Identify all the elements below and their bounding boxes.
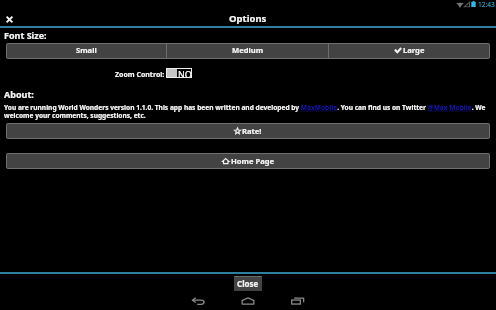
staticText: 12:43 bbox=[478, 0, 495, 9]
button[interactable]: Rate! bbox=[6, 123, 490, 139]
staticText: NO bbox=[178, 68, 192, 78]
button[interactable]: Home Page bbox=[6, 153, 490, 169]
staticText: Medium bbox=[232, 45, 264, 55]
button[interactable]: Home bbox=[223, 291, 273, 310]
button[interactable]: Back bbox=[173, 291, 223, 310]
button[interactable]: Small bbox=[6, 43, 166, 59]
button[interactable]: Large bbox=[329, 43, 490, 59]
button[interactable]: Recent apps bbox=[273, 291, 323, 310]
staticText: You are running World Wonders version 1.… bbox=[4, 103, 493, 120]
button[interactable]: Close bbox=[234, 276, 262, 291]
staticText: Rate! bbox=[242, 126, 262, 136]
staticText: Large bbox=[403, 45, 425, 55]
staticText: Font Size: bbox=[4, 29, 47, 41]
staticText: Small bbox=[76, 45, 97, 55]
button[interactable]: Medium bbox=[167, 43, 328, 59]
staticText: Zoom Control: bbox=[115, 70, 165, 80]
staticText: About: bbox=[4, 88, 34, 100]
staticText: Home Page bbox=[231, 156, 275, 166]
staticText: Options bbox=[229, 12, 267, 25]
button[interactable]: NO bbox=[166, 68, 192, 78]
button[interactable]: Close bbox=[2, 12, 16, 26]
staticText: Close bbox=[237, 278, 259, 289]
